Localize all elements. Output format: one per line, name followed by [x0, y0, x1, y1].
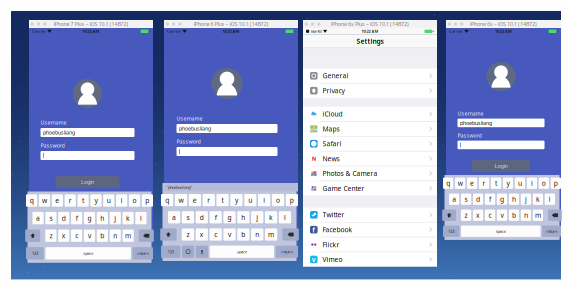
button[interactable]: t	[77, 194, 89, 207]
button[interactable]: k	[265, 211, 277, 223]
button[interactable]: t	[491, 177, 501, 189]
button[interactable]: q	[161, 194, 173, 206]
button[interactable]: n	[251, 228, 263, 241]
button[interactable]: r	[65, 194, 76, 207]
button[interactable]: y	[503, 177, 513, 189]
button[interactable]: c	[209, 228, 222, 241]
button[interactable]: x	[473, 209, 483, 221]
button[interactable]: space	[461, 225, 541, 237]
button[interactable]: Login	[472, 160, 530, 172]
button[interactable]: z	[461, 209, 471, 221]
button[interactable]: p	[551, 177, 561, 189]
button[interactable]: n	[521, 209, 531, 221]
button[interactable]: o	[272, 194, 284, 206]
button[interactable]: r	[479, 177, 489, 189]
button[interactable]: l	[279, 211, 291, 223]
button[interactable]: s	[45, 212, 57, 224]
button[interactable]: a	[168, 211, 180, 223]
button[interactable]: Emoji	[182, 246, 194, 258]
button[interactable]: f	[209, 211, 222, 223]
button[interactable]: v	[223, 228, 236, 241]
button[interactable]: g	[223, 211, 236, 223]
button[interactable]: Shift	[25, 229, 40, 242]
button[interactable]: e	[52, 194, 63, 207]
button[interactable]: h	[97, 212, 108, 224]
button[interactable]: b	[237, 228, 249, 241]
button[interactable]: v	[303, 252, 437, 267]
button[interactable]: f	[303, 222, 437, 237]
button[interactable]: g	[497, 193, 507, 205]
button[interactable]: j	[251, 211, 263, 223]
button[interactable]: t	[216, 194, 229, 206]
button[interactable]: Dictation	[196, 246, 208, 258]
button[interactable]: 123	[26, 247, 44, 259]
button[interactable]: w	[39, 194, 50, 207]
button[interactable]: n	[110, 229, 121, 242]
button[interactable]: iCloud	[303, 107, 437, 121]
button[interactable]: return	[542, 225, 561, 237]
button[interactable]: p	[142, 194, 153, 207]
button[interactable]: q	[443, 177, 453, 189]
button[interactable]: space	[210, 246, 274, 258]
button[interactable]: i	[527, 177, 537, 189]
button[interactable]: d	[196, 211, 208, 223]
button[interactable]: k	[122, 212, 134, 224]
button[interactable]: d	[473, 193, 483, 205]
button[interactable]: i	[116, 194, 127, 207]
button[interactable]: return	[276, 246, 298, 258]
button[interactable]: o	[129, 194, 140, 207]
button[interactable]: return	[132, 247, 153, 259]
button[interactable]: Twitter	[303, 208, 437, 222]
button[interactable]: v	[84, 229, 95, 242]
button[interactable]: Delete	[139, 229, 154, 242]
button[interactable]: c	[485, 209, 495, 221]
button[interactable]: Privacy	[303, 83, 437, 98]
button[interactable]: x	[58, 229, 69, 242]
button[interactable]: w	[455, 177, 465, 189]
button[interactable]: j	[521, 193, 531, 205]
button[interactable]: Delete	[282, 228, 299, 241]
button[interactable]: Delete	[548, 209, 562, 221]
button[interactable]: b	[509, 209, 519, 221]
button[interactable]: Safari	[303, 136, 437, 151]
button[interactable]: Maps	[303, 122, 437, 136]
button[interactable]: m	[122, 229, 134, 242]
button[interactable]: 123	[443, 225, 459, 237]
button[interactable]: q	[26, 194, 37, 207]
button[interactable]: u	[515, 177, 525, 189]
button[interactable]: g	[84, 212, 95, 224]
button[interactable]: s	[182, 211, 194, 223]
button[interactable]: y	[230, 194, 243, 206]
button[interactable]: l	[135, 212, 147, 224]
button[interactable]: a	[449, 193, 459, 205]
button[interactable]: e	[189, 194, 201, 206]
button[interactable]: f	[71, 212, 82, 224]
button[interactable]: c	[71, 229, 82, 242]
button[interactable]: r	[203, 194, 215, 206]
button[interactable]: j	[110, 212, 121, 224]
button[interactable]: m	[533, 209, 543, 221]
button[interactable]: Login	[55, 176, 119, 188]
button[interactable]: p	[286, 194, 298, 206]
button[interactable]: z	[182, 228, 194, 241]
button[interactable]: e	[467, 177, 477, 189]
button[interactable]: 123	[161, 246, 180, 258]
button[interactable]: i	[258, 194, 270, 206]
button[interactable]: o	[539, 177, 549, 189]
button[interactable]: h	[237, 211, 249, 223]
button[interactable]: m	[265, 228, 277, 241]
button[interactable]: u	[103, 194, 114, 207]
button[interactable]: s	[461, 193, 471, 205]
button[interactable]: Game Center	[303, 181, 437, 196]
button[interactable]: d	[58, 212, 69, 224]
button[interactable]: l	[545, 193, 555, 205]
button[interactable]: w	[175, 194, 187, 206]
button[interactable]: N	[303, 151, 437, 166]
button[interactable]: y	[90, 194, 102, 207]
button[interactable]: z	[45, 229, 57, 242]
button[interactable]: b	[97, 229, 108, 242]
button[interactable]: Flickr	[303, 237, 437, 252]
button[interactable]: x	[196, 228, 208, 241]
button[interactable]: v	[497, 209, 507, 221]
button[interactable]: Shift	[160, 228, 177, 241]
